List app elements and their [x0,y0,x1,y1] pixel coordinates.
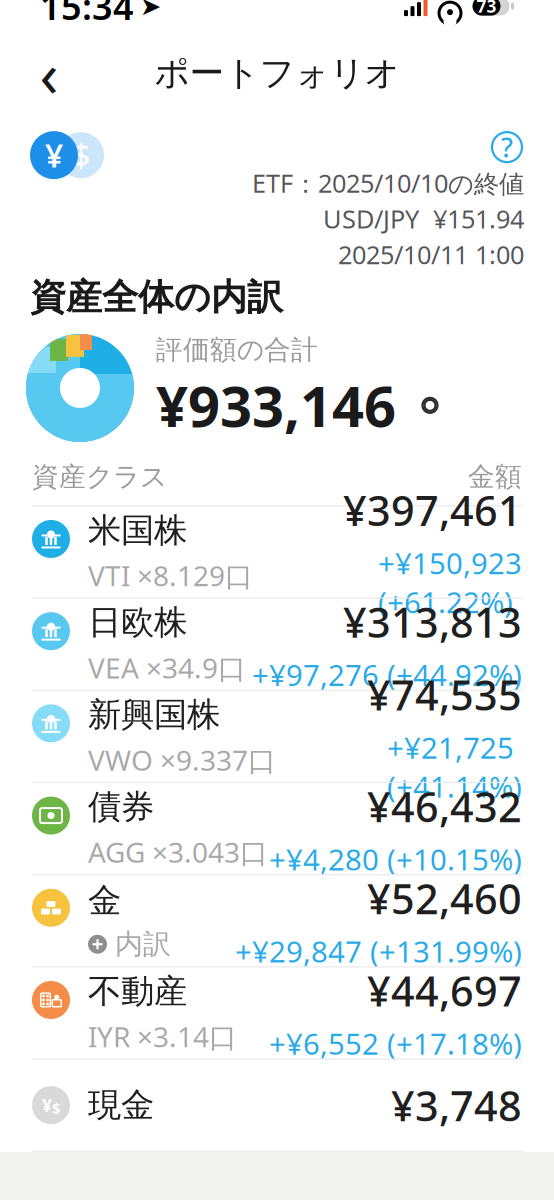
staticText: 金額 [468,460,522,493]
button[interactable]: Back [18,42,80,104]
staticText: IYR ×3.14口 [88,1018,237,1055]
staticText: 不動産 [88,971,187,1012]
staticText: 資産全体の内訳 [30,275,283,319]
button[interactable]: Hide amount [414,392,446,418]
staticText: +¥6,552 (+17.18%) [269,1024,522,1063]
staticText: 債券 [88,786,154,827]
staticText: ¥933,146 [156,368,396,443]
staticText: ¥44,697 [367,963,522,1018]
staticText: +¥21,725 (+41.14%) [387,728,522,806]
staticText: AGG ×3.043口 [88,833,268,871]
staticText: +¥29,847 (+131.99%) [235,932,522,971]
staticText: VWO ×9.337口 [88,741,276,778]
staticText: +¥97,276 (+44.92%) [252,655,522,694]
staticText: VEA ×34.9口 [88,649,246,686]
staticText: 内訳 [115,927,171,961]
staticText: ¥46,432 [367,779,522,834]
staticText: 資産クラス [32,460,167,493]
staticText: ¥313,813 [343,594,522,649]
button[interactable]: 新興国株 [0,691,554,782]
staticText: USD/JPY ¥151.94 [323,202,524,235]
staticText: 金 [88,880,121,921]
staticText: ¥3,748 [391,1078,522,1133]
staticText: 現金 [88,1085,154,1126]
staticText: ¥52,460 [367,871,522,926]
button[interactable]: 債券 [0,783,554,874]
button[interactable]: 米国株 [0,506,554,597]
button[interactable]: ¥ [0,1060,554,1151]
staticText: 新興国株 [88,694,220,735]
staticText: 日欧株 [88,602,187,643]
button[interactable]: 金 [0,875,554,966]
staticText: $ [72,134,90,176]
staticText: +¥4,280 (+10.15%) [269,839,522,878]
staticText: ¥ [42,1094,52,1117]
button[interactable]: 不動産 [0,967,554,1058]
staticText: ‹ [39,32,58,114]
staticText: +¥150,923 (+61.22%) [378,543,522,621]
staticText: 2025/10/11 1:00 [338,237,524,271]
staticText: ¥397,461 [343,483,522,537]
staticText: VTI ×8.129口 [88,557,253,594]
staticText: $ [52,1098,60,1118]
staticText: 米国株 [88,510,187,551]
staticText: ¥74,535 [367,667,522,722]
staticText: 73 [476,0,496,18]
staticText: ¥ [45,134,63,176]
staticText: ポートフォリオ [154,52,399,94]
button[interactable]: Help [490,130,524,164]
button[interactable]: 日欧株 [0,599,554,690]
staticText: ? [501,129,513,165]
button[interactable]: Switch currency [30,130,104,180]
staticText: ➤ [140,0,161,20]
staticText: 評価額の合計 [156,333,318,366]
staticText: 15:34 [40,0,134,30]
staticText: ETF：2025/10/10の終値 [252,166,524,200]
